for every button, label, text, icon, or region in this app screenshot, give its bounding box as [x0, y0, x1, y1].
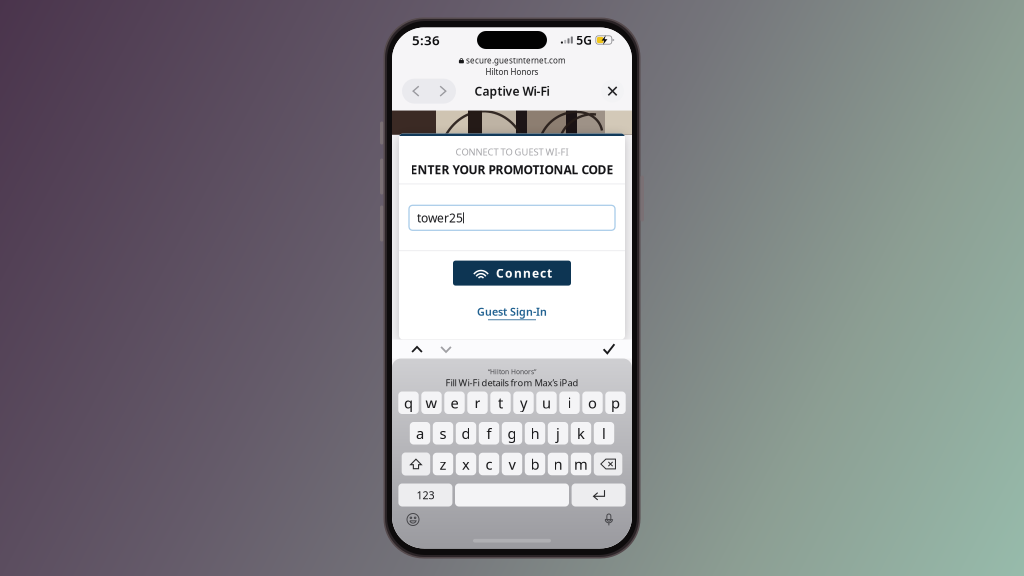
staticText: “Hilton Honors” [488, 367, 536, 376]
button[interactable]: p [605, 391, 626, 414]
button[interactable]: l [594, 422, 614, 444]
button[interactable]: f [479, 422, 499, 444]
staticText: t [498, 393, 503, 412]
button[interactable]: e [444, 391, 465, 414]
button[interactable]: Back [402, 79, 429, 104]
staticText: Guest Sign-In [477, 305, 547, 319]
button[interactable]: w [421, 391, 442, 414]
button[interactable]: n [548, 453, 568, 475]
staticText: CONNECT TO GUEST WI-FI [455, 146, 568, 158]
button[interactable]: r [467, 391, 488, 414]
button[interactable]: 123 [398, 483, 452, 506]
staticText: r [474, 393, 480, 412]
staticText: s [439, 423, 446, 443]
staticText: ENTER YOUR PROMOTIONAL CODE [410, 162, 613, 177]
button[interactable]: Connect [453, 261, 571, 286]
staticText: Fill Wi-Fi details from Max’s iPad [445, 376, 578, 389]
staticText: g [507, 423, 516, 443]
staticText: p [611, 393, 620, 412]
button[interactable]: Guest Sign-In [477, 305, 547, 320]
button[interactable]: q [398, 391, 419, 414]
button[interactable]: o [582, 391, 603, 414]
button[interactable]: m [571, 453, 591, 475]
staticText: secure.guestinternet.com [466, 55, 565, 66]
staticText: n [553, 454, 562, 474]
staticText: a [416, 423, 424, 443]
button[interactable]: Dictation [599, 509, 619, 529]
button[interactable]: Done [598, 339, 620, 358]
staticText: w [425, 393, 437, 412]
staticText: Captive Wi-Fi [474, 83, 549, 99]
button[interactable]: z [433, 453, 453, 475]
staticText: j [556, 423, 560, 443]
button[interactable]: Previous field [406, 339, 428, 358]
button[interactable]: h [525, 422, 545, 444]
button[interactable]: g [502, 422, 522, 444]
button[interactable]: Delete [594, 452, 622, 475]
button[interactable]: Forward [429, 79, 456, 104]
button[interactable]: s [433, 422, 453, 444]
staticText: m [574, 454, 588, 474]
staticText: Hilton Honors [485, 66, 538, 77]
button[interactable]: u [536, 391, 557, 414]
staticText: u [542, 393, 551, 412]
button[interactable]: y [513, 391, 534, 414]
button[interactable]: Close [601, 80, 624, 103]
staticText: b [530, 454, 539, 474]
staticText: i [567, 393, 571, 412]
staticText: k [577, 423, 585, 443]
staticText: x [462, 454, 470, 474]
button[interactable]: x [456, 453, 476, 475]
button[interactable]: Emoji keyboard [403, 509, 423, 529]
button[interactable]: v [502, 453, 522, 475]
staticText: q [404, 393, 413, 412]
button[interactable]: k [571, 422, 591, 444]
staticText: d [461, 423, 470, 443]
staticText: y [520, 393, 527, 412]
staticText: c [485, 454, 492, 474]
button[interactable]: c [479, 453, 499, 475]
button[interactable]: a [410, 422, 430, 444]
staticText: l [602, 423, 606, 443]
button[interactable]: i [559, 391, 580, 414]
button[interactable]: Next field [435, 339, 457, 358]
button[interactable]: Space [455, 483, 569, 506]
button[interactable]: b [525, 453, 545, 475]
staticText: o [588, 393, 597, 412]
staticText: f [486, 423, 491, 443]
staticText: 123 [416, 488, 434, 502]
button[interactable]: t [490, 391, 511, 414]
staticText: tower25 [417, 210, 463, 226]
button[interactable]: Shift [402, 452, 430, 475]
button[interactable]: d [456, 422, 476, 444]
button[interactable]: j [548, 422, 568, 444]
staticText: 5:36 [412, 31, 440, 49]
staticText: e [450, 393, 458, 412]
staticText: h [530, 423, 539, 443]
button[interactable]: Return [572, 483, 626, 506]
staticText: 5G [576, 32, 592, 48]
staticText: z [439, 454, 446, 474]
staticText: v [508, 454, 515, 474]
staticText: Connect [496, 265, 552, 281]
